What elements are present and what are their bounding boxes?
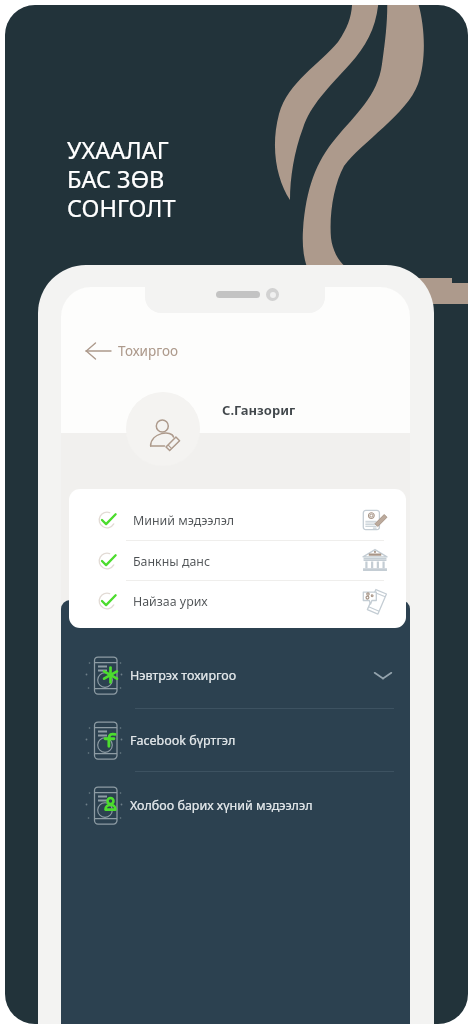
staticText: Facebook бүртгэл — [130, 732, 236, 749]
staticText: Нэвтрэх тохиргоо — [130, 667, 237, 684]
button[interactable]: Facebook бүртгэл — [61, 708, 410, 772]
staticText: Холбоо барих хүний мэдээлэл — [130, 797, 313, 814]
button[interactable]: Найзаа урих — [69, 581, 406, 621]
button[interactable]: Edit profile photo — [126, 392, 200, 466]
staticText: Миний мэдээлэл — [133, 512, 235, 529]
button[interactable]: Холбоо барих хүний мэдээлэл — [61, 773, 410, 837]
other: Expand — [372, 664, 394, 686]
staticText: УХААЛАГ БАС ЗӨВ СОНГОЛТ — [67, 134, 176, 223]
button[interactable]: Миний мэдээлэл — [69, 500, 406, 540]
button[interactable]: Банкны данс — [69, 541, 406, 581]
staticText: С.Ганзориг — [222, 401, 296, 419]
button[interactable]: Нэвтрэх тохиргоо — [61, 643, 410, 707]
other: Back — [84, 338, 112, 364]
button[interactable]: Back — [84, 338, 179, 364]
staticText: Найзаа урих — [133, 593, 208, 610]
staticText: Банкны данс — [133, 553, 211, 570]
staticText: Тохиргоо — [118, 342, 179, 360]
